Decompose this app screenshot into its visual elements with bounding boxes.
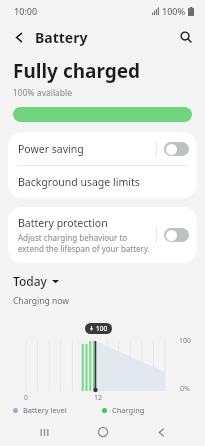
button[interactable]: Battery protection: [8, 207, 197, 263]
button[interactable]: Home: [89, 418, 117, 446]
staticText: Adjust charging behaviour to extend the …: [18, 232, 150, 254]
staticText: 100%: [162, 5, 186, 17]
button[interactable]: Recents: [30, 418, 58, 446]
staticText: Power saving: [18, 142, 156, 156]
staticText: Charging now: [13, 295, 69, 307]
staticText: 12: [94, 393, 103, 403]
button[interactable]: Today: [13, 273, 59, 289]
staticText: Battery level: [23, 405, 67, 415]
staticText: Fully charged: [13, 58, 141, 84]
staticText: Battery protection: [18, 216, 108, 230]
staticText: Charging: [112, 405, 145, 415]
staticText: 0%: [180, 384, 190, 394]
staticText: Estimated battery level: [23, 419, 102, 439]
staticText: Battery: [35, 28, 88, 47]
staticText: 100: [179, 336, 192, 346]
staticText: 100: [96, 324, 108, 333]
staticText: Today: [13, 273, 47, 289]
staticText: 100% available: [13, 87, 73, 99]
button[interactable]: Power saving: [8, 132, 197, 165]
button[interactable]: Toggle: [164, 142, 189, 156]
button[interactable]: Back: [147, 418, 175, 446]
button[interactable]: Back: [6, 24, 32, 50]
button[interactable]: Search: [173, 24, 199, 50]
staticText: Background usage limits: [18, 175, 140, 189]
button[interactable]: Background usage limits: [8, 166, 197, 198]
staticText: 10:00: [14, 5, 38, 17]
button[interactable]: Toggle: [164, 228, 189, 242]
staticText: 0: [24, 393, 29, 403]
